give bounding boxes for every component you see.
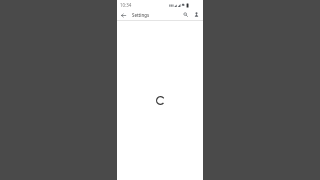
staticText: Settings <box>132 12 150 18</box>
button[interactable]: Account <box>192 10 200 18</box>
button[interactable]: Search <box>181 10 189 18</box>
button[interactable]: Back <box>119 11 127 19</box>
staticText: 10:34 <box>120 2 132 8</box>
